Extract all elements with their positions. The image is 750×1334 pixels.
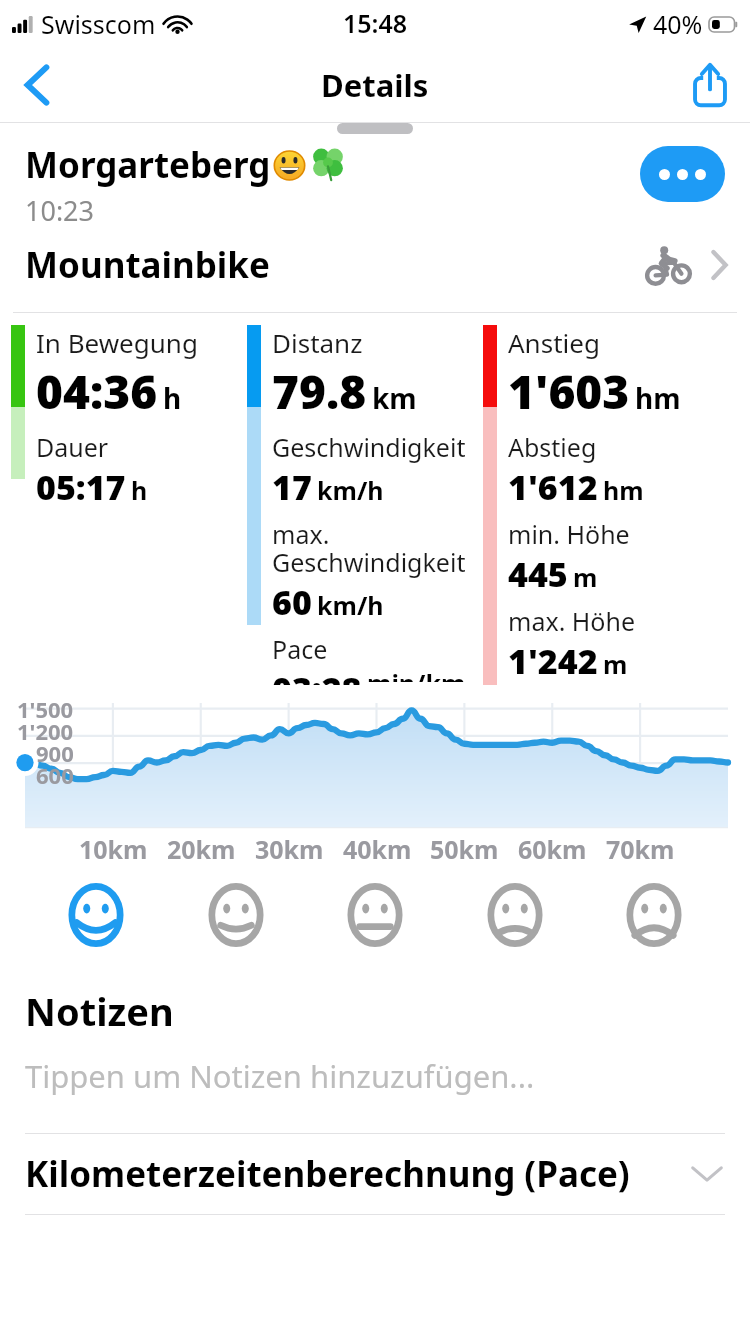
staticText: Details (321, 64, 429, 106)
staticText: 50km (430, 832, 499, 866)
staticText: Notizen (25, 985, 174, 1037)
staticText: Swisscom (41, 7, 156, 41)
staticText: Abstieg (508, 430, 597, 464)
staticText: 900 (36, 738, 74, 768)
staticText: 04:36 (36, 360, 158, 423)
button[interactable]: Rating 5 (618, 879, 690, 951)
staticText: 10km (79, 832, 148, 866)
staticText: km (372, 379, 417, 417)
staticText: 1'242 (508, 638, 598, 684)
staticText: h (163, 379, 182, 417)
button[interactable]: Kilometerzeitenberechnung (Pace) (0, 1134, 750, 1214)
button[interactable]: Back (8, 56, 66, 114)
staticText: 05:17 (36, 464, 126, 510)
staticText: In Bewegung (36, 325, 198, 360)
staticText: 40km (343, 832, 412, 866)
other: Expand (690, 1163, 724, 1185)
staticText: 20km (167, 832, 236, 866)
staticText: hm (635, 379, 681, 417)
staticText: 15:48 (343, 6, 408, 40)
staticText: Mountainbike (25, 241, 270, 289)
staticText: max. Geschwindigkeit (272, 517, 472, 579)
staticText: 10:23 (25, 192, 95, 224)
staticText: 1'612 (508, 464, 598, 510)
staticText: 1'200 (17, 716, 74, 746)
staticText: hm (603, 473, 644, 507)
button[interactable]: Mountainbike (0, 234, 750, 296)
staticText: 70km (606, 832, 675, 866)
button[interactable]: Rating 1 (60, 879, 132, 951)
button[interactable]: Rating 3 (339, 879, 411, 951)
staticText: Anstieg (508, 325, 600, 360)
staticText: km/h (317, 588, 384, 622)
staticText: Distanz (272, 325, 363, 360)
staticText: Tippen um Notizen hinzuzufügen... (25, 1055, 535, 1097)
staticText: h (131, 473, 148, 507)
staticText: Pace (272, 632, 328, 666)
staticText: Geschwindigkeit (272, 430, 466, 464)
staticText: 40% (653, 7, 703, 41)
staticText: 1'603 (508, 360, 630, 423)
staticText: Kilometerzeitenberechnung (Pace) (25, 1150, 630, 1198)
staticText: m (573, 560, 598, 594)
staticText: min. Höhe (508, 517, 630, 551)
staticText: max. Höhe (508, 604, 636, 638)
staticText: km/h (317, 473, 384, 507)
staticText: 60km (518, 832, 587, 866)
button[interactable]: Tippen um Notizen hinzuzufügen... (25, 1055, 725, 1097)
staticText: 60 (272, 579, 312, 625)
button[interactable]: Rating 4 (479, 879, 551, 951)
staticText: 30km (255, 832, 324, 866)
staticText: 1'500 (17, 694, 74, 724)
button[interactable]: Share (682, 57, 738, 113)
staticText: Dauer (36, 430, 109, 464)
staticText: 03:28 (272, 666, 362, 685)
staticText: m (603, 647, 628, 681)
button[interactable]: More options (640, 146, 725, 202)
staticText: 17 (272, 464, 312, 510)
staticText: Morgarteberg (25, 141, 271, 189)
staticText: 79.8 (272, 360, 367, 423)
staticText: min/km (367, 666, 466, 682)
button[interactable]: Rating 2 (200, 879, 272, 951)
staticText: 600 (36, 760, 74, 790)
staticText: 445 (508, 551, 568, 597)
